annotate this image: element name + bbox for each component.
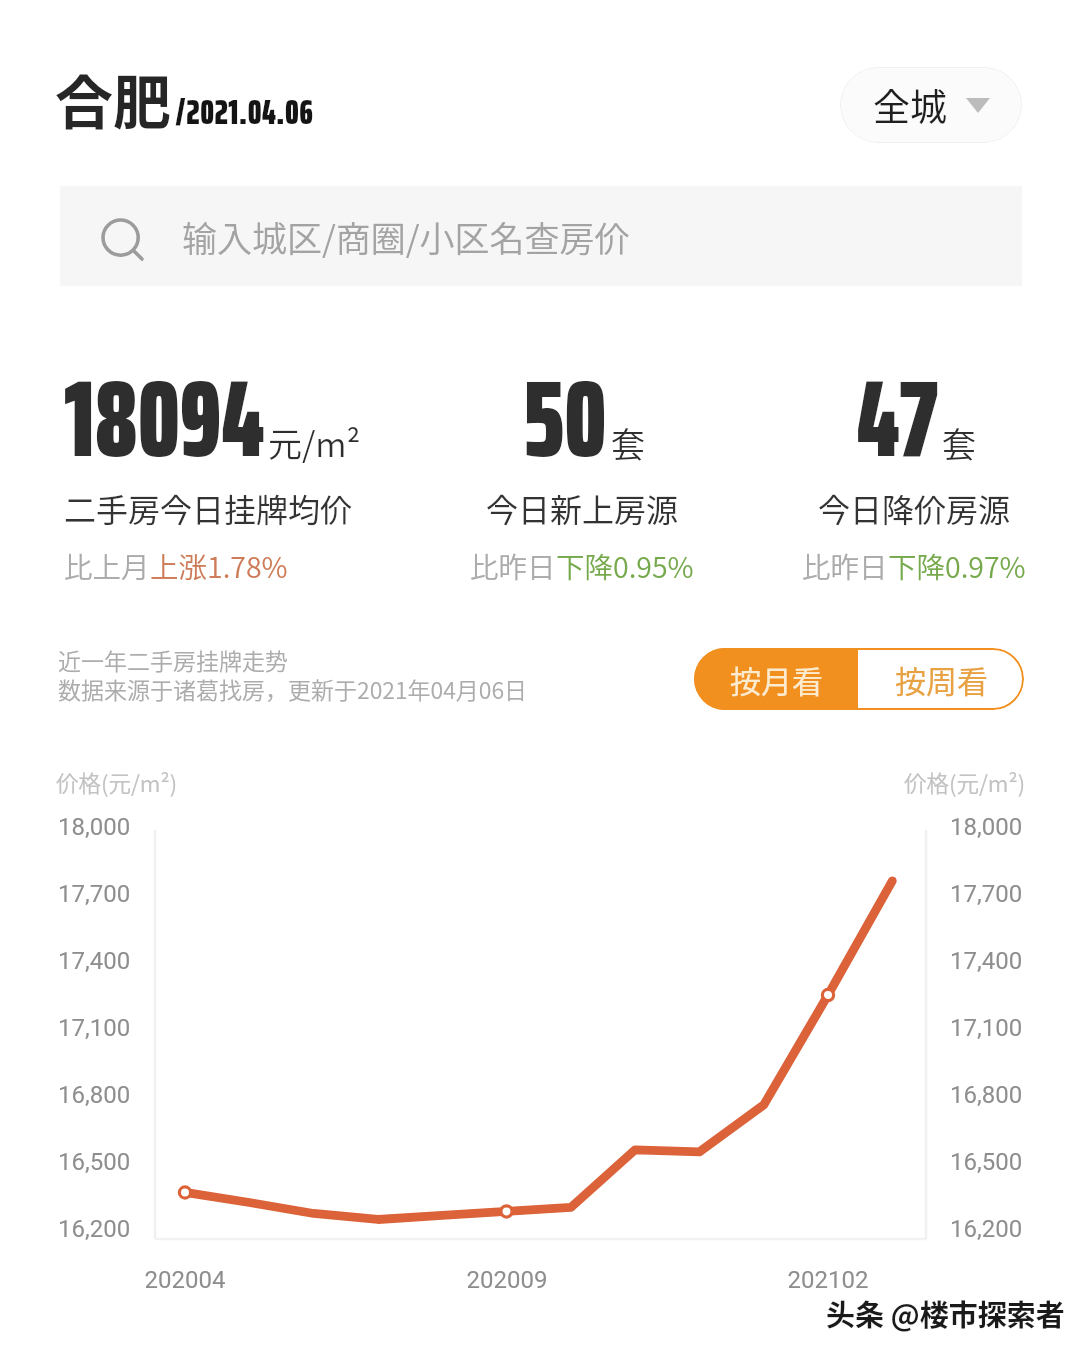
staticText: 元/m² (268, 418, 361, 467)
staticText: 上涨1.78% (150, 545, 288, 586)
staticText: 18,000 (950, 813, 1023, 841)
staticText: 16,500 (58, 1148, 131, 1176)
staticText: 下降0.97% (888, 545, 1026, 586)
staticText: 合肥 (55, 57, 172, 141)
staticText: 202102 (758, 1266, 898, 1294)
staticText: 47 (857, 335, 938, 503)
button[interactable]: 按周看 (858, 648, 1024, 710)
other: Search (102, 219, 146, 263)
staticText: 下降0.95% (556, 545, 694, 586)
staticText: 头条 @楼市探索者 (827, 1293, 1066, 1335)
staticText: 输入城区/商圈/小区名查房价 (182, 211, 630, 262)
staticText: 17,400 (58, 947, 131, 975)
staticText: 数据来源于诸葛找房，更新于2021年04月06日 (58, 672, 528, 705)
staticText: 按月看 (730, 657, 823, 702)
staticText: 17,400 (950, 947, 1023, 975)
staticText: 16,800 (950, 1081, 1023, 1109)
staticText: 近一年二手房挂牌走势 (58, 643, 288, 676)
staticText: 18094 (64, 335, 264, 503)
button[interactable]: Search (60, 186, 1022, 286)
staticText: 比昨日 (470, 545, 556, 586)
staticText: 头条 @楼市探索者 (826, 1292, 1065, 1334)
staticText: 按周看 (895, 657, 988, 702)
staticText: 今日新上房源 (486, 485, 679, 531)
staticText: 202009 (437, 1266, 577, 1294)
staticText: 50 (523, 335, 607, 503)
staticText: 17,700 (58, 880, 131, 908)
staticText: 16,800 (58, 1081, 131, 1109)
staticText: 18,000 (58, 813, 131, 841)
staticText: 17,100 (950, 1014, 1023, 1042)
staticText: 16,500 (950, 1148, 1023, 1176)
staticText: 二手房今日挂牌均价 (64, 485, 353, 531)
staticText: 比上月 (64, 545, 150, 586)
staticText: 16,200 (58, 1215, 131, 1243)
staticText: 今日降价房源 (818, 485, 1011, 531)
button[interactable]: 全城 (840, 67, 1022, 143)
staticText: 16,200 (950, 1215, 1023, 1243)
staticText: 价格(元/m²) (904, 766, 1026, 799)
staticText: /2021.04.06 (175, 84, 314, 139)
staticText: 全城 (873, 78, 947, 132)
staticText: 价格(元/m²) (56, 766, 178, 799)
staticText: 比昨日 (802, 545, 888, 586)
staticText: 17,700 (950, 880, 1023, 908)
staticText: 套 (611, 418, 645, 467)
staticText: 202004 (115, 1266, 255, 1294)
staticText: 17,100 (58, 1014, 131, 1042)
staticText: 套 (942, 418, 976, 467)
button[interactable]: 按月看 (694, 648, 858, 710)
